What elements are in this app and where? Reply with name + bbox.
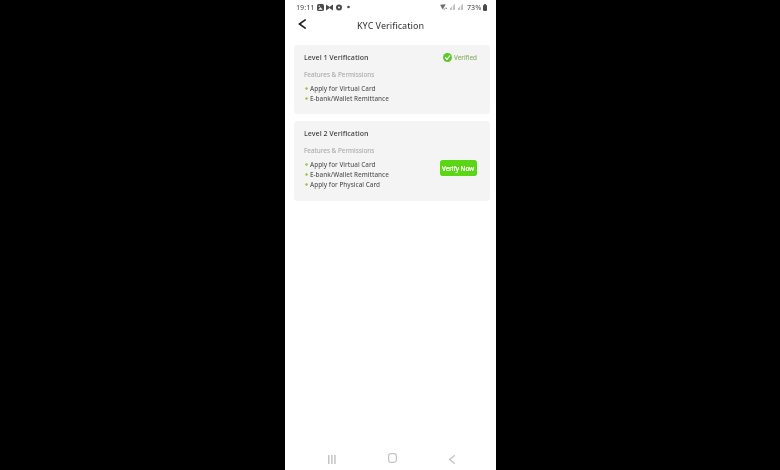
staticText: Apply for Virtual Card bbox=[310, 84, 376, 93]
staticText: KYC Verification bbox=[357, 19, 424, 31]
staticText: E-bank/Wallet Remittance bbox=[310, 170, 389, 179]
staticText: Features & Permissions bbox=[304, 146, 375, 155]
button[interactable]: Recent apps bbox=[323, 450, 341, 468]
staticText: Level 2 Verification bbox=[304, 129, 369, 139]
button[interactable]: Home bbox=[383, 449, 401, 467]
staticText: Apply for Physical Card bbox=[310, 180, 380, 189]
staticText: Apply for Virtual Card bbox=[310, 160, 376, 169]
button[interactable]: Verified bbox=[443, 53, 477, 62]
staticText: Verified bbox=[454, 53, 477, 62]
staticText: E-bank/Wallet Remittance bbox=[310, 94, 389, 103]
staticText: 73% bbox=[467, 2, 482, 12]
button[interactable]: Back bbox=[443, 450, 461, 468]
staticText: Features & Permissions bbox=[304, 70, 375, 79]
staticText: 19:11 bbox=[296, 2, 315, 12]
button[interactable]: Level 1 Verification bbox=[294, 45, 490, 114]
button[interactable]: Verify Now bbox=[440, 160, 477, 176]
staticText: Verify Now bbox=[442, 164, 475, 172]
button[interactable]: Level 2 Verification bbox=[294, 121, 490, 201]
button[interactable]: Back bbox=[293, 15, 311, 33]
staticText: Level 1 Verification bbox=[304, 53, 369, 63]
